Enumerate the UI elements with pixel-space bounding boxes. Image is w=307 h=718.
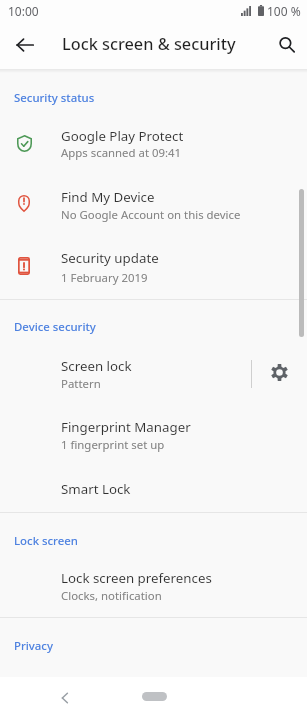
staticText: Security update	[61, 249, 159, 267]
button[interactable]: Security update	[0, 244, 307, 285]
staticText: Smart Lock	[61, 480, 131, 498]
staticText: Google Play Protect	[61, 127, 184, 145]
staticText: Lock screen & security	[62, 33, 236, 55]
button[interactable]: Screen lock	[0, 352, 251, 392]
staticText: Privacy	[14, 638, 53, 654]
button[interactable]: Search	[270, 28, 303, 61]
staticText: Screen lock	[61, 357, 132, 375]
button[interactable]: Lock screen	[0, 527, 307, 549]
button[interactable]: Google Play Protect	[0, 122, 307, 163]
button[interactable]: Security status	[0, 84, 307, 106]
staticText: Apps scanned at 09:41	[61, 145, 182, 161]
button[interactable]: Back	[48, 681, 82, 715]
staticText: Fingerprint Manager	[61, 418, 191, 436]
button[interactable]: Screen lock settings	[256, 349, 302, 395]
button[interactable]: Fingerprint Manager	[0, 412, 307, 453]
button[interactable]: Device security	[0, 313, 307, 335]
button[interactable]: Lock screen preferences	[0, 564, 307, 605]
button[interactable]: Find My Device	[0, 183, 307, 224]
staticText: 10:00	[8, 3, 39, 19]
staticText: Lock screen preferences	[61, 569, 212, 587]
staticText: Pattern	[61, 376, 101, 392]
button[interactable]: Privacy	[0, 632, 307, 654]
staticText: Security status	[14, 90, 95, 106]
button[interactable]: Home	[131, 685, 177, 707]
staticText: Clocks, notification	[61, 588, 162, 604]
button[interactable]: Back	[8, 28, 41, 61]
staticText: No Google Account on this device	[61, 207, 241, 223]
staticText: 100 %	[267, 3, 301, 19]
staticText: Lock screen	[14, 533, 78, 549]
staticText: 1 February 2019	[61, 270, 148, 286]
staticText: Find My Device	[61, 188, 155, 206]
staticText: Device security	[14, 319, 96, 335]
staticText: 1 fingerprint set up	[61, 437, 165, 453]
button[interactable]: Smart Lock	[0, 476, 307, 502]
